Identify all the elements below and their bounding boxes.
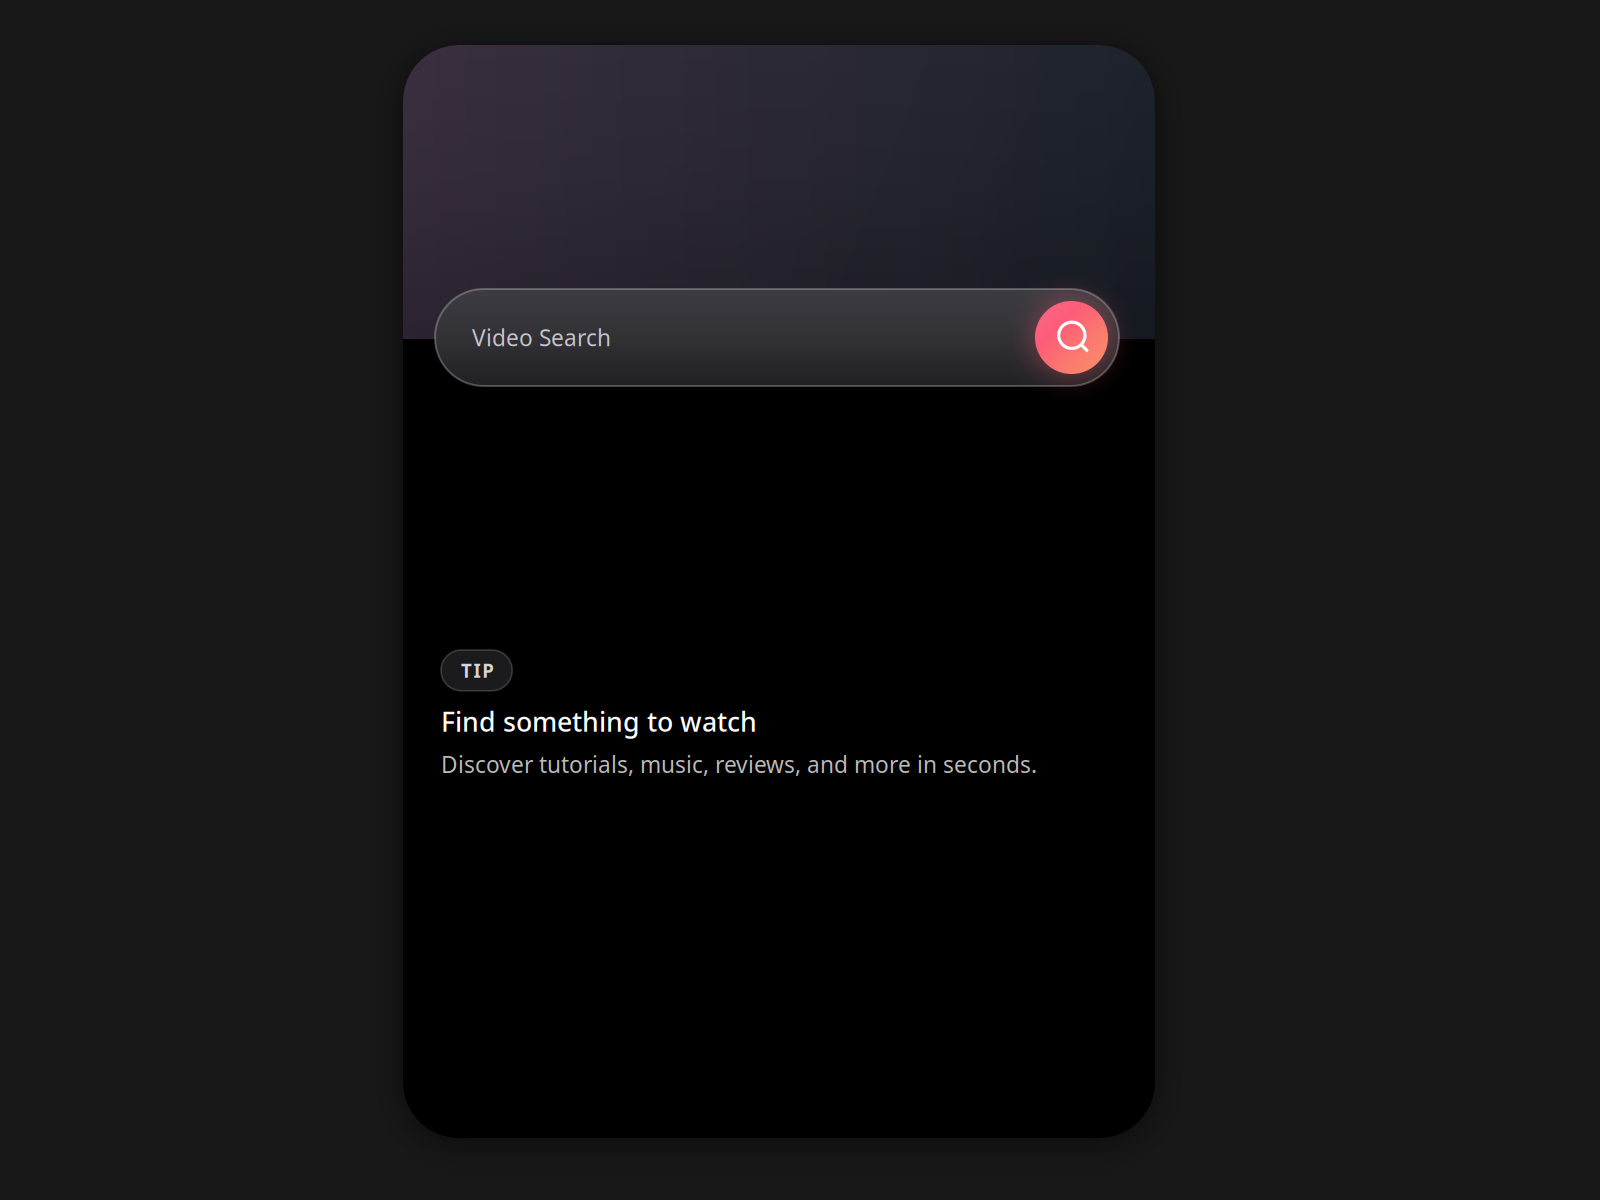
- staticText: Video Search: [472, 322, 611, 352]
- staticText: TIP: [461, 658, 494, 683]
- staticText: Discover tutorials, music, reviews, and …: [441, 749, 1037, 779]
- button[interactable]: Search: [1035, 301, 1108, 374]
- staticText: Find something to watch: [441, 704, 757, 739]
- button[interactable]: Video Search: [435, 289, 1119, 386]
